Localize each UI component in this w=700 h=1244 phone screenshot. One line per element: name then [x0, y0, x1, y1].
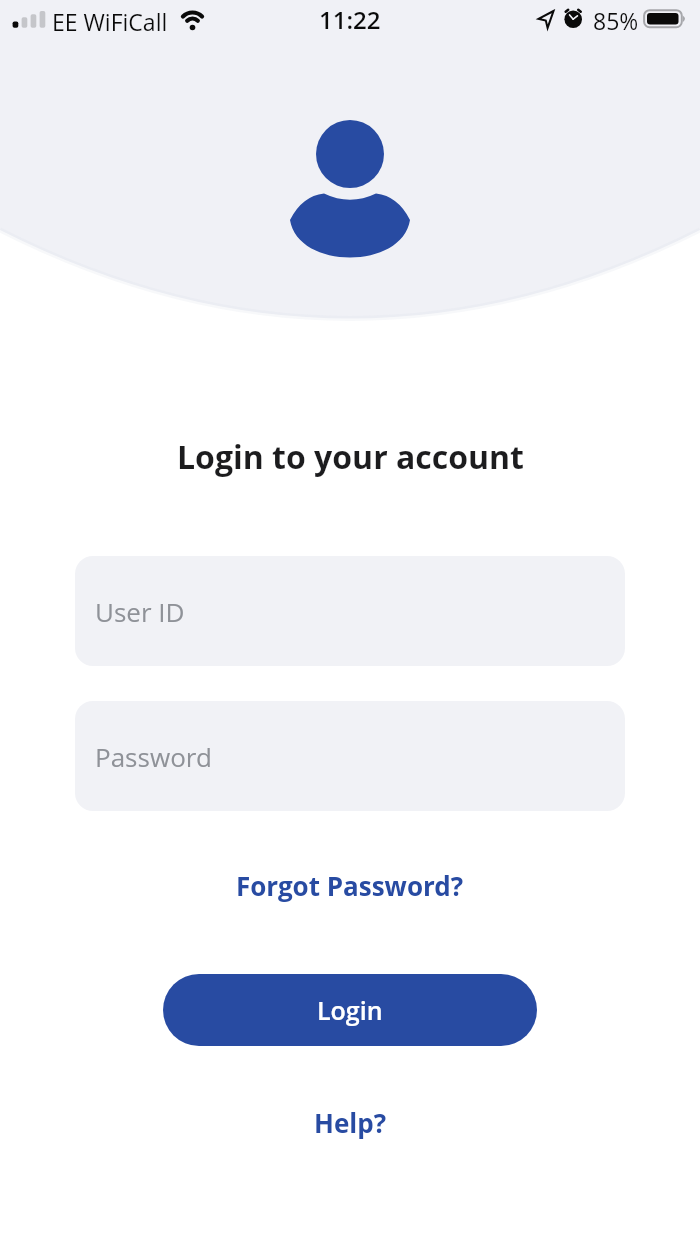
staticText: 85% — [593, 5, 639, 36]
button[interactable]: Forgot Password? — [236, 868, 464, 903]
staticText: EE WiFiCall — [52, 6, 168, 37]
button[interactable]: Password — [75, 701, 625, 811]
button[interactable]: User ID — [75, 556, 625, 666]
staticText: Login to your account — [177, 435, 524, 479]
staticText: Login — [317, 993, 383, 1027]
staticText: 11:22 — [319, 3, 381, 36]
button[interactable]: Login — [163, 974, 537, 1046]
staticText: Password — [95, 739, 212, 774]
staticText: Help? — [314, 1105, 387, 1140]
staticText: User ID — [95, 594, 185, 629]
button[interactable]: Help? — [314, 1105, 387, 1140]
staticText: Forgot Password? — [236, 868, 464, 903]
